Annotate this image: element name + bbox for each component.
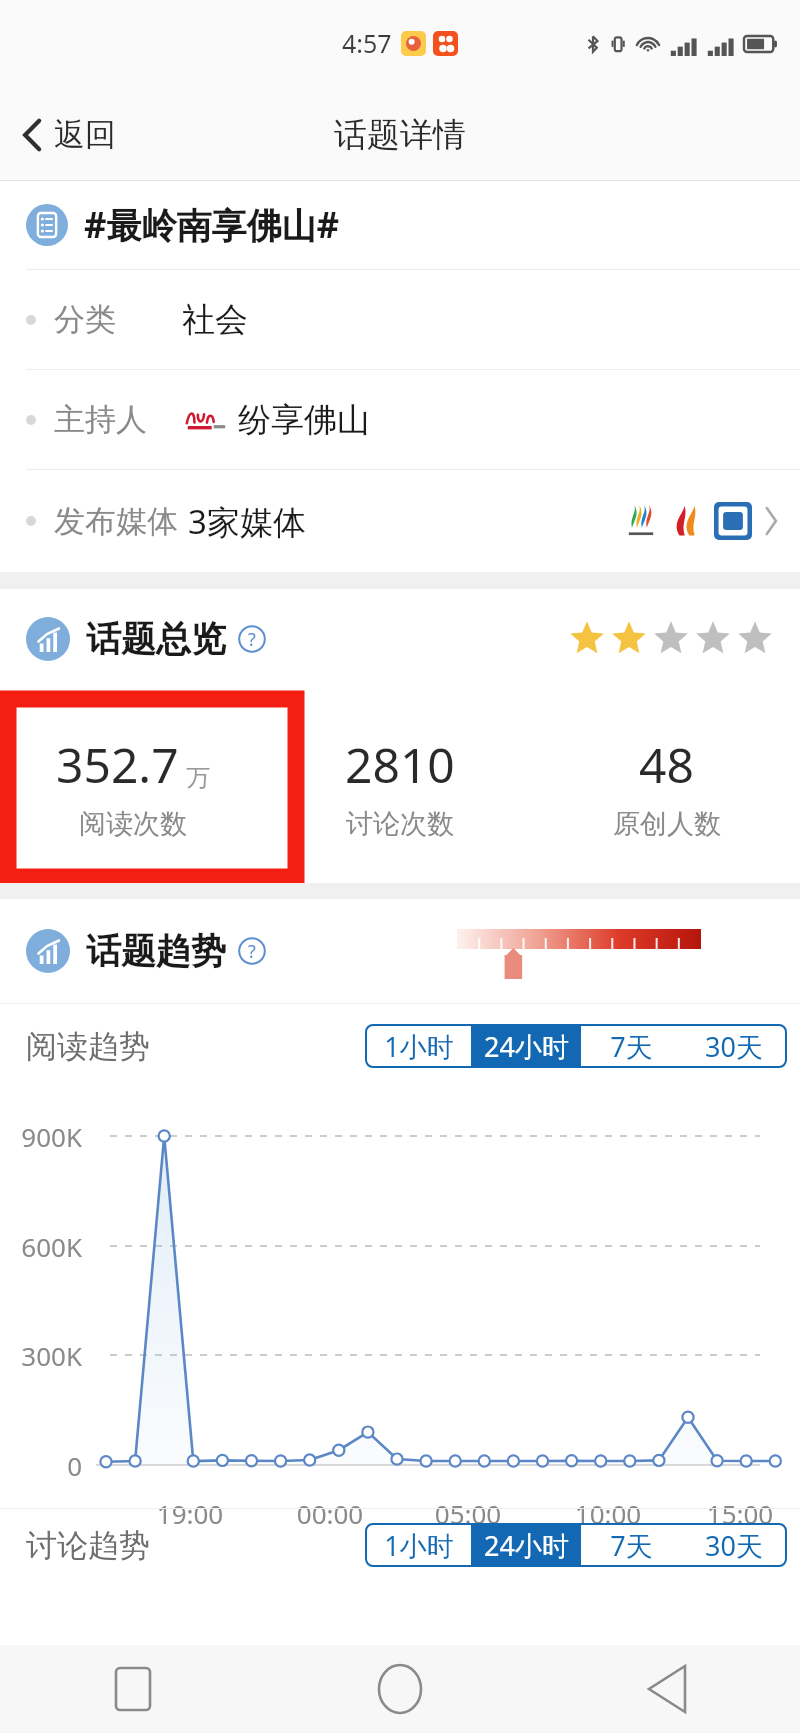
button[interactable]: 返回 [0, 88, 134, 181]
staticText: 万 [186, 763, 210, 793]
button[interactable]: 24小时 [471, 1524, 581, 1566]
staticText: 7天 [610, 1028, 653, 1065]
staticText: 社会 [182, 299, 248, 341]
staticText: 0 [0, 1448, 82, 1483]
staticText: 30天 [705, 1028, 763, 1065]
staticText: 19:00 [145, 1496, 235, 1531]
staticText: 30天 [705, 1527, 763, 1564]
staticText: 15:00 [695, 1496, 785, 1531]
staticText: 讨论趋势 [26, 1526, 150, 1565]
staticText: 返回 [54, 115, 116, 154]
button[interactable]: 1小时 [366, 1025, 471, 1067]
staticText: 3家媒体 [188, 499, 306, 544]
staticText: 话题总览 [86, 617, 226, 661]
staticText: 阅读次数 [79, 807, 187, 841]
button[interactable]: Home [266, 1645, 533, 1733]
staticText: 4:57 [342, 26, 392, 60]
button[interactable]: 48 [533, 689, 800, 883]
staticText: 讨论次数 [346, 807, 454, 841]
staticText: 00:00 [285, 1496, 375, 1531]
button[interactable]: 帮助说明 [238, 625, 266, 653]
staticText: 24小时 [484, 1527, 569, 1564]
staticText: 话题趋势 [86, 929, 226, 973]
staticText: 352.7 [56, 732, 179, 797]
staticText: ? [248, 939, 256, 964]
button[interactable]: #最岭南享佛山# [0, 181, 800, 269]
button[interactable]: 2810 [266, 689, 533, 883]
staticText: 原创人数 [613, 807, 721, 841]
staticText: #最岭南享佛山# [84, 201, 340, 249]
staticText: 10:00 [563, 1496, 653, 1531]
staticText: 话题详情 [334, 114, 466, 156]
button[interactable]: 30天 [681, 1025, 786, 1067]
staticText: 1小时 [384, 1527, 454, 1564]
staticText: 900K [0, 1119, 82, 1154]
button[interactable]: 主持人 [0, 370, 800, 469]
button[interactable]: Recent apps [0, 1645, 266, 1733]
staticText: 24小时 [484, 1028, 569, 1065]
staticText: 7天 [610, 1527, 653, 1564]
staticText: 纷享佛山 [238, 399, 370, 441]
button[interactable]: 1小时 [366, 1524, 471, 1566]
staticText: 阅读趋势 [26, 1027, 150, 1066]
button[interactable]: 帮助说明 [238, 937, 266, 965]
button[interactable]: Back [533, 1645, 800, 1733]
button[interactable]: 7天 [581, 1025, 681, 1067]
staticText: 发布媒体 [54, 502, 178, 541]
button[interactable]: 发布媒体 [0, 470, 800, 572]
staticText: 48 [639, 732, 694, 797]
button[interactable]: 24小时 [471, 1025, 581, 1067]
staticText: 05:00 [423, 1496, 513, 1531]
staticText: 2810 [345, 732, 455, 797]
staticText: 1小时 [384, 1028, 454, 1065]
button[interactable]: 30天 [681, 1524, 786, 1566]
staticText: 300K [0, 1338, 82, 1373]
staticText: 600K [0, 1229, 82, 1264]
button[interactable]: 352.7 [0, 689, 266, 883]
staticText: ? [248, 627, 256, 652]
button[interactable]: 7天 [581, 1524, 681, 1566]
staticText: 主持人 [54, 400, 147, 439]
button[interactable]: 分类 [0, 270, 800, 369]
staticText: 分类 [54, 300, 116, 339]
